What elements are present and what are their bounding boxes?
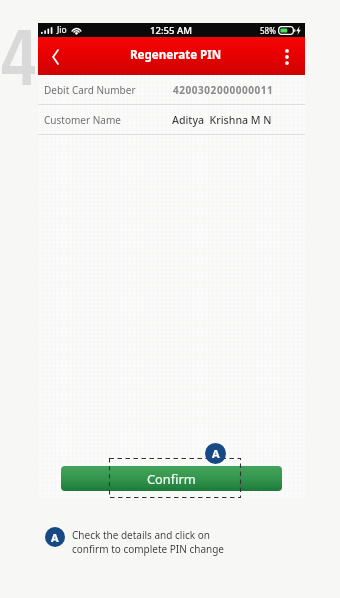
staticText: A xyxy=(212,446,220,461)
staticText: Check the details and click on confirm t… xyxy=(72,528,225,556)
button[interactable]: Back xyxy=(38,38,74,74)
staticText: Confirm xyxy=(147,470,196,487)
staticText: Regenerate PIN xyxy=(130,47,222,63)
staticText: Aditya Krishna M N xyxy=(172,113,272,127)
staticText: Customer Name xyxy=(44,113,121,127)
staticText: 12:55 AM xyxy=(150,24,193,37)
button[interactable]: More options xyxy=(269,38,305,74)
staticText: A xyxy=(51,530,59,545)
button[interactable]: Confirm xyxy=(61,466,282,491)
staticText: 4200302000000011 xyxy=(173,83,274,97)
staticText: Jio xyxy=(57,24,67,36)
staticText: Debit Card Number xyxy=(44,83,136,97)
staticText: 58% xyxy=(260,25,276,36)
